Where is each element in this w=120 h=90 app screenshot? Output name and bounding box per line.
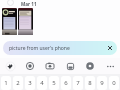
- button[interactable]: More options: [102, 58, 118, 74]
- staticText: 9: [100, 79, 104, 87]
- staticText: 1: [4, 79, 8, 87]
- button[interactable]: Photo attachment 1: [2, 8, 17, 35]
- staticText: 6: [64, 79, 68, 87]
- button[interactable]: 1: [1, 76, 11, 90]
- staticText: 0: [112, 79, 116, 87]
- staticText: 3: [28, 79, 32, 87]
- staticText: Mar 11: [21, 1, 37, 7]
- button[interactable]: picture from user's phone: [3, 41, 117, 55]
- button[interactable]: Photo attachment 2: [18, 8, 33, 35]
- button[interactable]: 4: [37, 76, 47, 90]
- button[interactable]: 9: [97, 76, 107, 90]
- staticText: 8: [88, 79, 92, 87]
- button[interactable]: Settings: [82, 58, 98, 74]
- button[interactable]: 8: [85, 76, 95, 90]
- button[interactable]: 7: [73, 76, 83, 90]
- button[interactable]: 6: [61, 76, 71, 90]
- staticText: 2: [16, 79, 20, 87]
- button[interactable]: Gallery: [62, 58, 78, 74]
- button[interactable]: Camera: [42, 58, 58, 74]
- button[interactable]: Gemini assistant: [2, 58, 18, 74]
- button[interactable]: 5: [49, 76, 59, 90]
- staticText: picture from user's phone: [9, 45, 70, 52]
- button[interactable]: Stickers: [22, 58, 38, 74]
- button[interactable]: 0: [109, 76, 119, 90]
- staticText: 5: [52, 79, 56, 87]
- button[interactable]: Remove attachment: [105, 43, 115, 53]
- staticText: 4: [40, 79, 44, 87]
- button[interactable]: 2: [13, 76, 23, 90]
- staticText: 7: [76, 79, 80, 87]
- button[interactable]: 3: [25, 76, 35, 90]
